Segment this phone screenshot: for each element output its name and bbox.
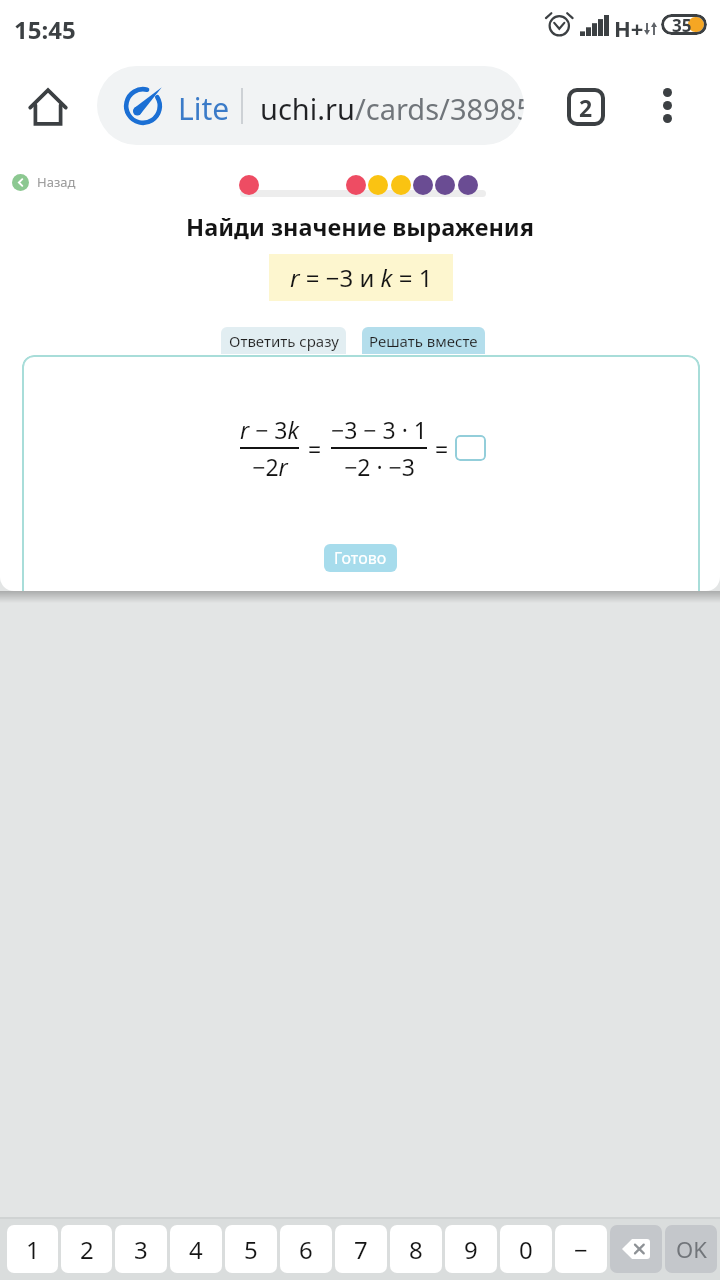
- staticText: −: [574, 1233, 588, 1266]
- staticText: 35: [672, 14, 692, 35]
- staticText: uchi.ru: [260, 89, 355, 128]
- button[interactable]: −: [555, 1225, 607, 1273]
- button[interactable]: 9: [445, 1225, 497, 1273]
- staticText: Найди значение выражения: [0, 211, 720, 243]
- staticText: 2: [80, 1233, 94, 1266]
- button[interactable]: OK: [665, 1225, 717, 1273]
- staticText: /cards/38985: [355, 89, 524, 128]
- staticText: 2: [579, 92, 593, 123]
- staticText: −3 − 3 · 1: [331, 414, 427, 445]
- staticText: Назад: [37, 173, 76, 191]
- button[interactable]: 2: [61, 1225, 112, 1273]
- staticText: OK: [676, 1234, 707, 1264]
- staticText: Ответить сразу: [229, 331, 339, 351]
- staticText: r − 3k: [240, 414, 299, 445]
- staticText: 8: [409, 1233, 423, 1266]
- button[interactable]: Назад: [9, 170, 79, 194]
- staticText: =: [435, 433, 449, 464]
- staticText: 6: [299, 1233, 313, 1266]
- staticText: −2r: [252, 451, 288, 482]
- button[interactable]: Ответить сразу: [221, 327, 346, 354]
- button[interactable]: Tabs: [556, 77, 615, 136]
- staticText: −2 · −3: [344, 451, 415, 482]
- button[interactable]: 6: [280, 1225, 332, 1273]
- staticText: 4: [189, 1233, 203, 1266]
- button[interactable]: 5: [225, 1225, 277, 1273]
- button[interactable]: Готово: [324, 544, 397, 572]
- staticText: H+: [614, 13, 644, 43]
- staticText: 15:45: [14, 13, 76, 46]
- button[interactable]: [455, 435, 486, 461]
- button[interactable]: Backspace: [610, 1225, 662, 1273]
- staticText: 1: [26, 1233, 40, 1266]
- button[interactable]: 1: [7, 1225, 58, 1273]
- staticText: 3: [134, 1233, 148, 1266]
- staticText: Lite: [178, 88, 230, 129]
- staticText: r = −3 и k = 1: [290, 261, 433, 294]
- staticText: 9: [464, 1233, 478, 1266]
- staticText: 7: [354, 1233, 368, 1266]
- button[interactable]: More options: [639, 77, 695, 133]
- button[interactable]: 7: [335, 1225, 387, 1273]
- staticText: 5: [244, 1233, 258, 1266]
- button[interactable]: 0: [500, 1225, 552, 1273]
- button[interactable]: Решать вместе: [362, 327, 485, 354]
- staticText: =: [308, 433, 322, 464]
- staticText: Готово: [334, 547, 387, 569]
- staticText: Решать вместе: [369, 331, 478, 351]
- staticText: 0: [519, 1233, 533, 1266]
- button[interactable]: Home: [20, 77, 76, 133]
- button[interactable]: 3: [115, 1225, 167, 1273]
- button[interactable]: Lite: [97, 66, 524, 145]
- button[interactable]: 4: [170, 1225, 222, 1273]
- button[interactable]: 8: [390, 1225, 442, 1273]
